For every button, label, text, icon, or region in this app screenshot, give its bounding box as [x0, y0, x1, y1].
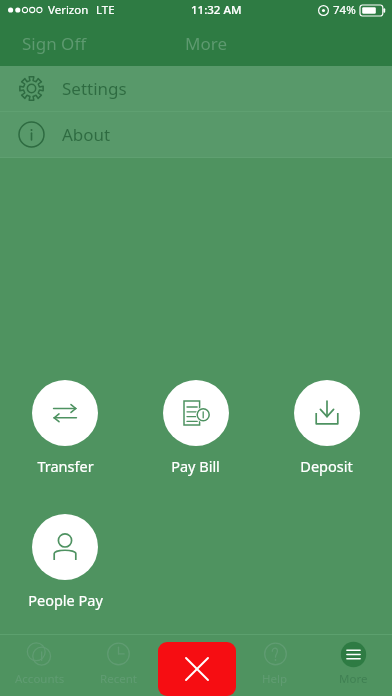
staticText: LTE: [96, 2, 115, 18]
button[interactable]: More: [171, 26, 241, 61]
button[interactable]: Pay Bill: [130, 380, 261, 476]
button[interactable]: Deposit: [261, 380, 392, 476]
button[interactable]: Recent: [79, 634, 158, 696]
staticText: Verizon: [48, 2, 89, 18]
button[interactable]: Accounts: [0, 634, 79, 696]
staticText: Pay Bill: [171, 456, 220, 476]
button[interactable]: Close: [158, 642, 236, 696]
button[interactable]: About: [0, 112, 392, 157]
staticText: 11:32 AM: [191, 2, 242, 18]
staticText: Recent: [100, 671, 137, 687]
staticText: Accounts: [15, 671, 65, 687]
button[interactable]: Transfer: [0, 380, 130, 476]
staticText: Help: [262, 671, 288, 687]
staticText: Deposit: [300, 456, 353, 476]
button[interactable]: Settings: [0, 66, 392, 111]
staticText: More: [185, 32, 227, 55]
staticText: Sign Off: [22, 32, 87, 55]
staticText: 74%: [333, 2, 356, 18]
staticText: Transfer: [37, 456, 94, 476]
button[interactable]: People Pay: [0, 514, 130, 610]
button[interactable]: More: [314, 634, 392, 696]
button[interactable]: Help: [236, 634, 314, 696]
button[interactable]: Sign Off: [6, 26, 103, 61]
staticText: Settings: [62, 77, 127, 100]
staticText: More: [339, 671, 368, 687]
staticText: About: [62, 123, 111, 146]
staticText: People Pay: [28, 590, 103, 610]
